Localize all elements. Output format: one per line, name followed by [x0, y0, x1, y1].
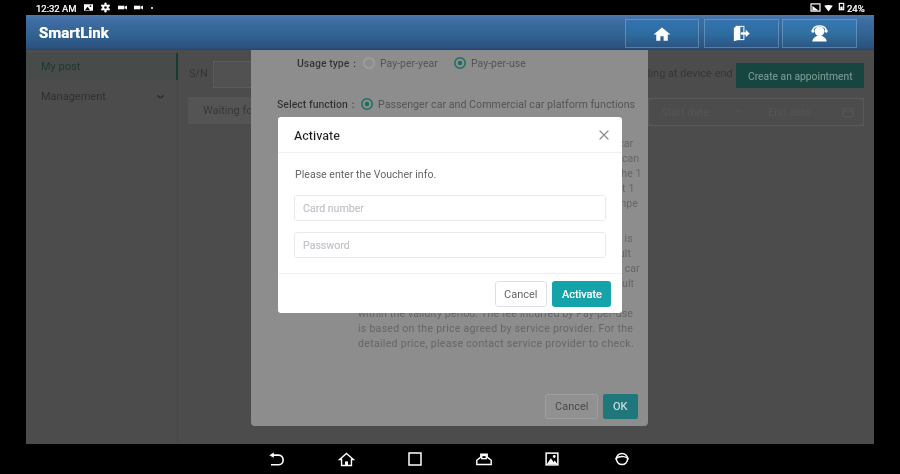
- staticText: platform functions may be used for unlim…: [358, 277, 634, 289]
- staticText: is based on the price agreed by service …: [358, 322, 634, 334]
- staticText: Waiting for confirmation: [203, 104, 322, 117]
- button[interactable]: Back: [264, 444, 290, 474]
- button[interactable]: Management: [26, 80, 178, 112]
- button[interactable]: Activate: [552, 281, 611, 307]
- button[interactable]: Home: [625, 19, 699, 48]
- button[interactable]: Start date: [648, 98, 864, 126]
- staticText: day on which the activation of the Vouch…: [358, 197, 638, 209]
- staticText: platform functions or Commercial car pla…: [358, 152, 640, 164]
- button[interactable]: Cancel: [495, 281, 547, 307]
- staticText: Loading at device end: [626, 67, 733, 80]
- button[interactable]: Home: [333, 444, 359, 474]
- staticText: Passenger car and Commercial car platfor…: [378, 98, 636, 111]
- button[interactable]: VCI: [471, 444, 497, 474]
- button[interactable]: Password: [294, 232, 606, 258]
- staticText: Pay-per-year means the authorization of …: [358, 137, 634, 149]
- staticText: Management: [41, 90, 106, 103]
- staticText: 12:32 AM: [36, 3, 77, 14]
- button[interactable]: Customer support: [782, 19, 857, 48]
- staticText: Cancel: [555, 400, 589, 413]
- staticText: Card number: [303, 202, 364, 214]
- button[interactable]: Log out: [704, 19, 779, 48]
- staticText: charged according to the times of usage.…: [358, 247, 631, 259]
- button[interactable]: Recent apps: [402, 444, 428, 474]
- staticText: be used for unlimited times within the v…: [358, 167, 642, 179]
- staticText: detailed price, please contact service p…: [358, 337, 634, 349]
- staticText: SmartLink: [39, 24, 109, 42]
- button[interactable]: Waiting for confirmation: [188, 97, 337, 124]
- staticText: Pay-per-year: [380, 57, 438, 69]
- staticText: My post: [41, 60, 81, 73]
- staticText: Select function：: [277, 98, 359, 111]
- staticText: of the report and the diagnostic data ca…: [358, 292, 648, 304]
- button[interactable]: Card number: [294, 195, 606, 221]
- staticText: within the validity period. The fee incu…: [358, 307, 634, 319]
- staticText: Usage type：: [297, 57, 360, 70]
- button[interactable]: OK: [603, 394, 638, 419]
- staticText: S/N: [189, 67, 208, 80]
- staticText: Pay-per-use: [471, 57, 526, 69]
- button[interactable]: Gallery: [539, 444, 565, 474]
- staticText: 24%: [847, 3, 865, 14]
- button[interactable]: My post: [26, 53, 178, 80]
- staticText: Please enter the Voucher info.: [295, 168, 437, 180]
- button[interactable]: Browser: [609, 444, 635, 474]
- button[interactable]: Cancel: [545, 394, 598, 419]
- button[interactable]: Create an appointment: [736, 63, 864, 88]
- staticText: Cancel: [504, 288, 538, 301]
- button[interactable]: [213, 61, 291, 88]
- staticText: OK: [613, 400, 628, 413]
- staticText: year, and the validity period is calcula…: [358, 182, 635, 194]
- staticText: Create an appointment: [748, 70, 853, 82]
- staticText: Pay-per-use means the authorization of t…: [358, 232, 634, 244]
- button[interactable]: Close: [594, 125, 614, 145]
- staticText: Activate: [562, 288, 602, 301]
- staticText: of each report can be downloaded freely.…: [358, 262, 640, 274]
- staticText: Activate: [294, 128, 340, 143]
- staticText: Password: [303, 239, 350, 251]
